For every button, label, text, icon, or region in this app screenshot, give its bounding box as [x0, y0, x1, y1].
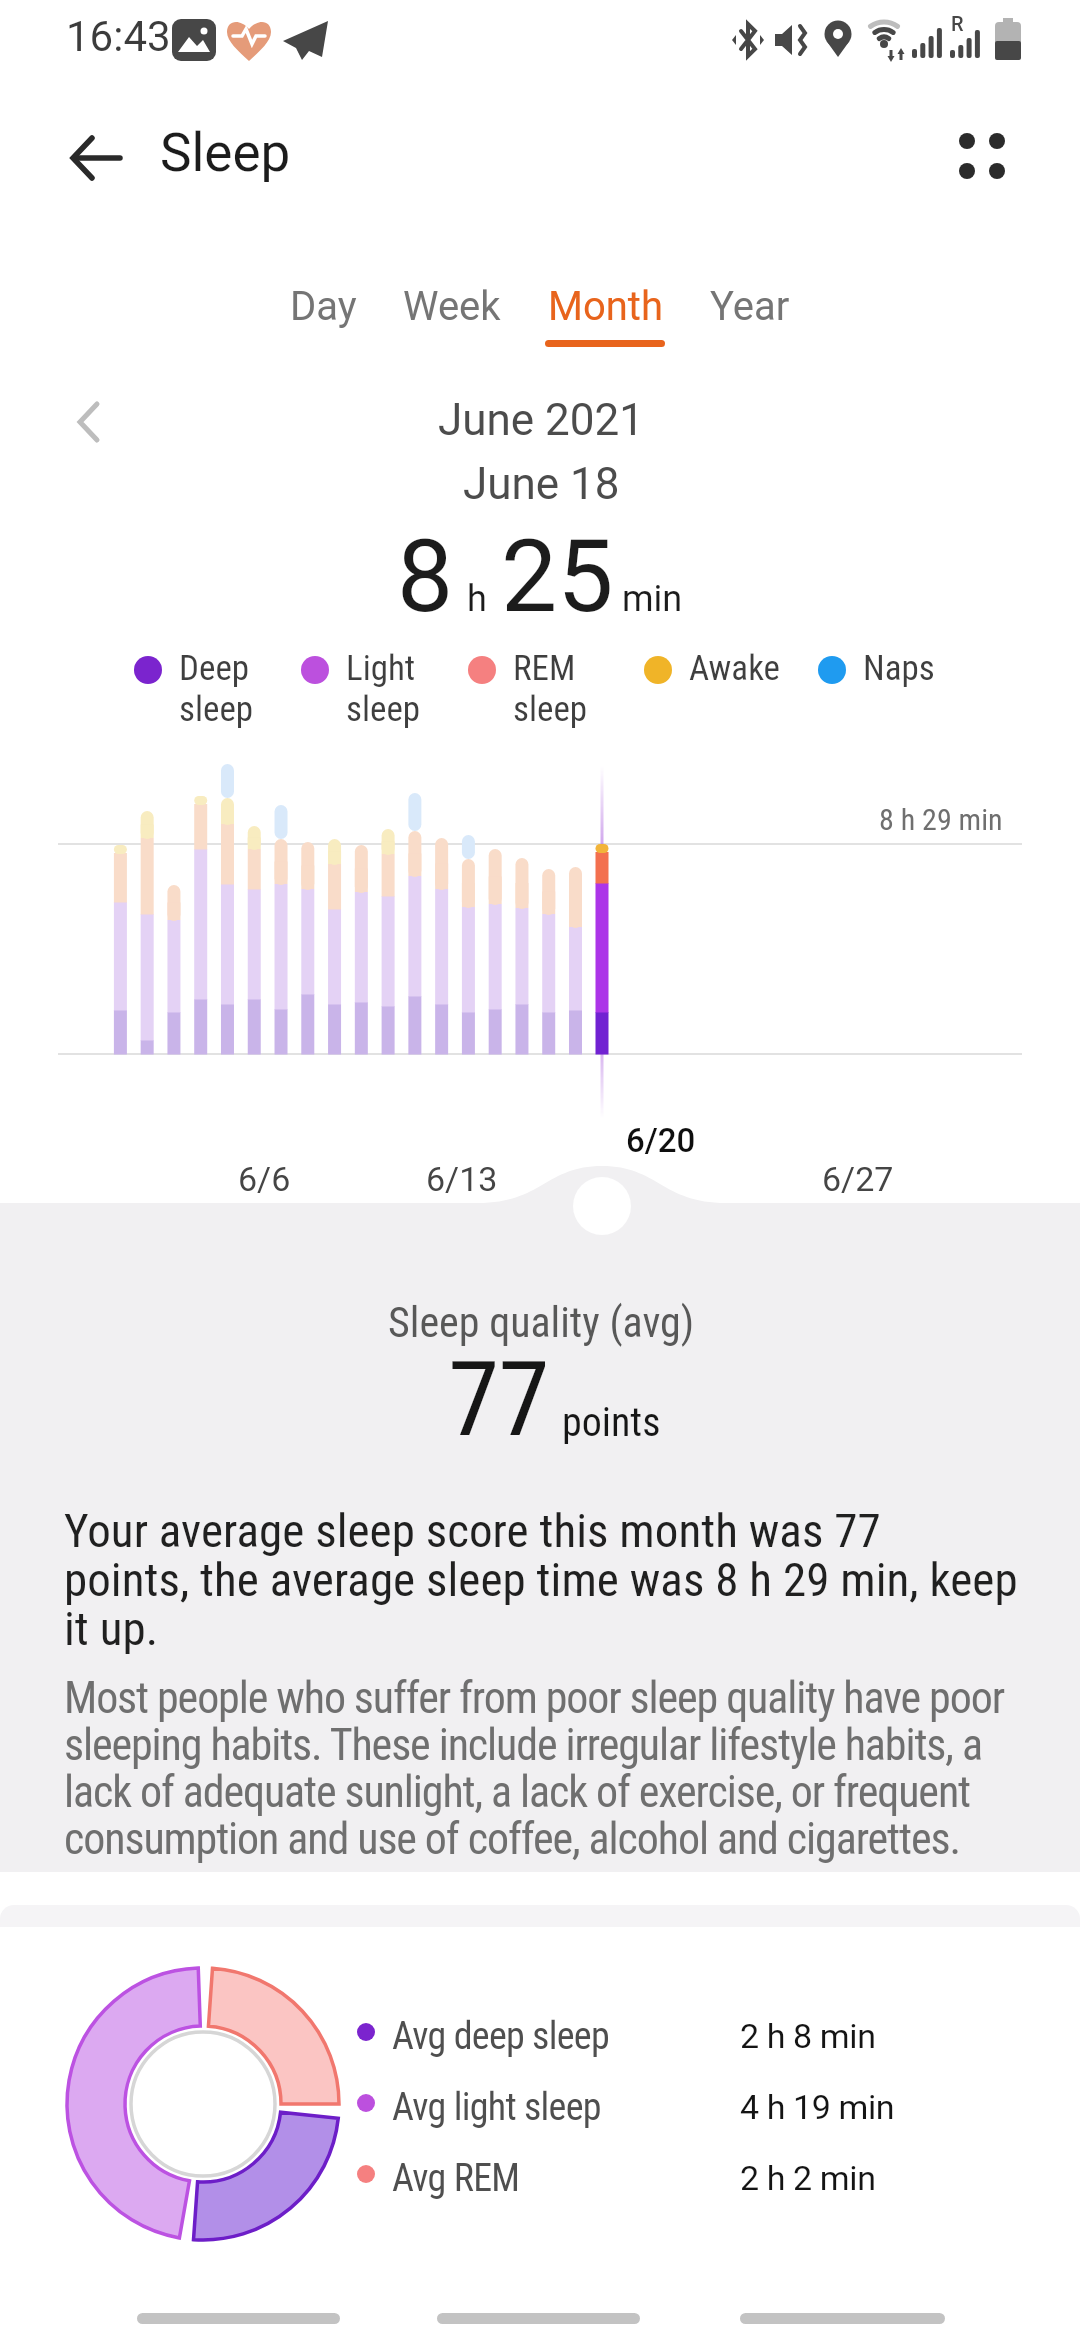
button[interactable] — [930, 108, 1034, 204]
button[interactable] — [56, 390, 120, 454]
staticText: 6/6 — [238, 1159, 291, 1199]
staticText: 6/20 — [626, 1121, 696, 1160]
staticText: Day — [290, 283, 357, 330]
staticText: 2 h 2 min — [740, 2158, 876, 2198]
staticText: Awake — [689, 648, 780, 689]
staticText: 77 — [448, 1339, 549, 1461]
staticText: Avg deep sleep — [392, 2014, 610, 2059]
staticText: Light sleep — [346, 648, 421, 729]
staticText: h — [467, 578, 487, 620]
staticText: 6/13 — [426, 1159, 498, 1199]
button[interactable]: Year — [680, 271, 820, 341]
staticText: Month — [548, 283, 663, 330]
staticText: Deep sleep — [179, 648, 254, 729]
staticText: 8 — [397, 518, 454, 635]
staticText: Avg REM — [392, 2156, 520, 2201]
staticText: REM sleep — [513, 648, 588, 729]
button[interactable]: Week — [377, 271, 527, 341]
staticText: 2 h 8 min — [740, 2016, 876, 2056]
staticText: Naps — [863, 648, 935, 689]
staticText: Year — [710, 283, 790, 330]
staticText: 25 — [501, 518, 614, 635]
staticText: Sleep quality (avg) — [388, 1298, 695, 1347]
staticText: 8 h 29 min — [879, 802, 1003, 837]
staticText: R — [951, 12, 964, 35]
button[interactable] — [573, 1177, 631, 1235]
staticText: Avg light sleep — [392, 2085, 601, 2130]
staticText: points — [562, 1399, 661, 1446]
staticText: Week — [403, 283, 501, 330]
staticText: 4 h 19 min — [740, 2087, 895, 2127]
button[interactable]: Day — [253, 271, 393, 341]
button[interactable]: Month — [525, 271, 685, 341]
button[interactable] — [48, 110, 144, 206]
staticText: Sleep — [160, 122, 291, 184]
staticText: 16:43 — [66, 12, 171, 61]
staticText: Your average sleep score this month was … — [64, 1503, 1018, 1656]
staticText: Most people who suffer from poor sleep q… — [64, 1672, 1005, 1865]
staticText: min — [622, 578, 683, 620]
staticText: June 2021 — [438, 394, 644, 446]
staticText: 6/27 — [822, 1159, 894, 1199]
staticText: June 18 — [463, 458, 620, 510]
